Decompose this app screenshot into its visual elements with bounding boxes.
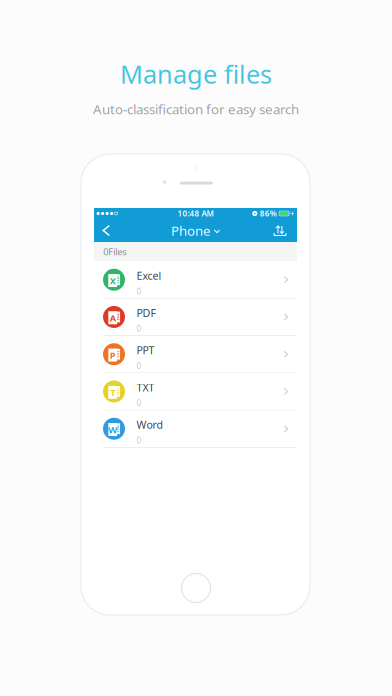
staticText: 0 xyxy=(136,435,141,446)
staticText: PPT xyxy=(136,343,154,357)
staticText: PDF xyxy=(136,306,156,320)
staticText: Word xyxy=(136,418,163,432)
staticText: TXT xyxy=(136,380,154,395)
button[interactable]: T xyxy=(94,373,297,410)
button[interactable]: Phone xyxy=(163,219,228,242)
button[interactable]: W xyxy=(94,410,297,448)
staticText: Phone xyxy=(171,222,211,239)
staticText: 10:48 AM xyxy=(177,208,213,219)
button[interactable]: Back xyxy=(94,219,120,242)
staticText: 0 xyxy=(136,398,141,408)
button[interactable]: A xyxy=(94,299,297,336)
staticText: A xyxy=(110,312,116,324)
button[interactable]: P xyxy=(94,336,297,373)
staticText: 86% xyxy=(260,208,277,219)
button[interactable]: Transfer files xyxy=(271,219,297,242)
staticText: P xyxy=(110,349,116,361)
staticText: Excel xyxy=(136,269,161,283)
staticText: Auto-classification for easy search xyxy=(93,100,299,118)
staticText: Manage files xyxy=(120,57,272,91)
staticText: T xyxy=(110,386,115,399)
staticText: X xyxy=(110,274,116,287)
staticText: 0 xyxy=(136,361,141,371)
staticText: W xyxy=(108,423,117,436)
staticText: 0Files xyxy=(103,246,126,258)
staticText: 0 xyxy=(136,286,141,297)
staticText: 0 xyxy=(136,323,141,334)
button[interactable]: X xyxy=(94,261,297,299)
